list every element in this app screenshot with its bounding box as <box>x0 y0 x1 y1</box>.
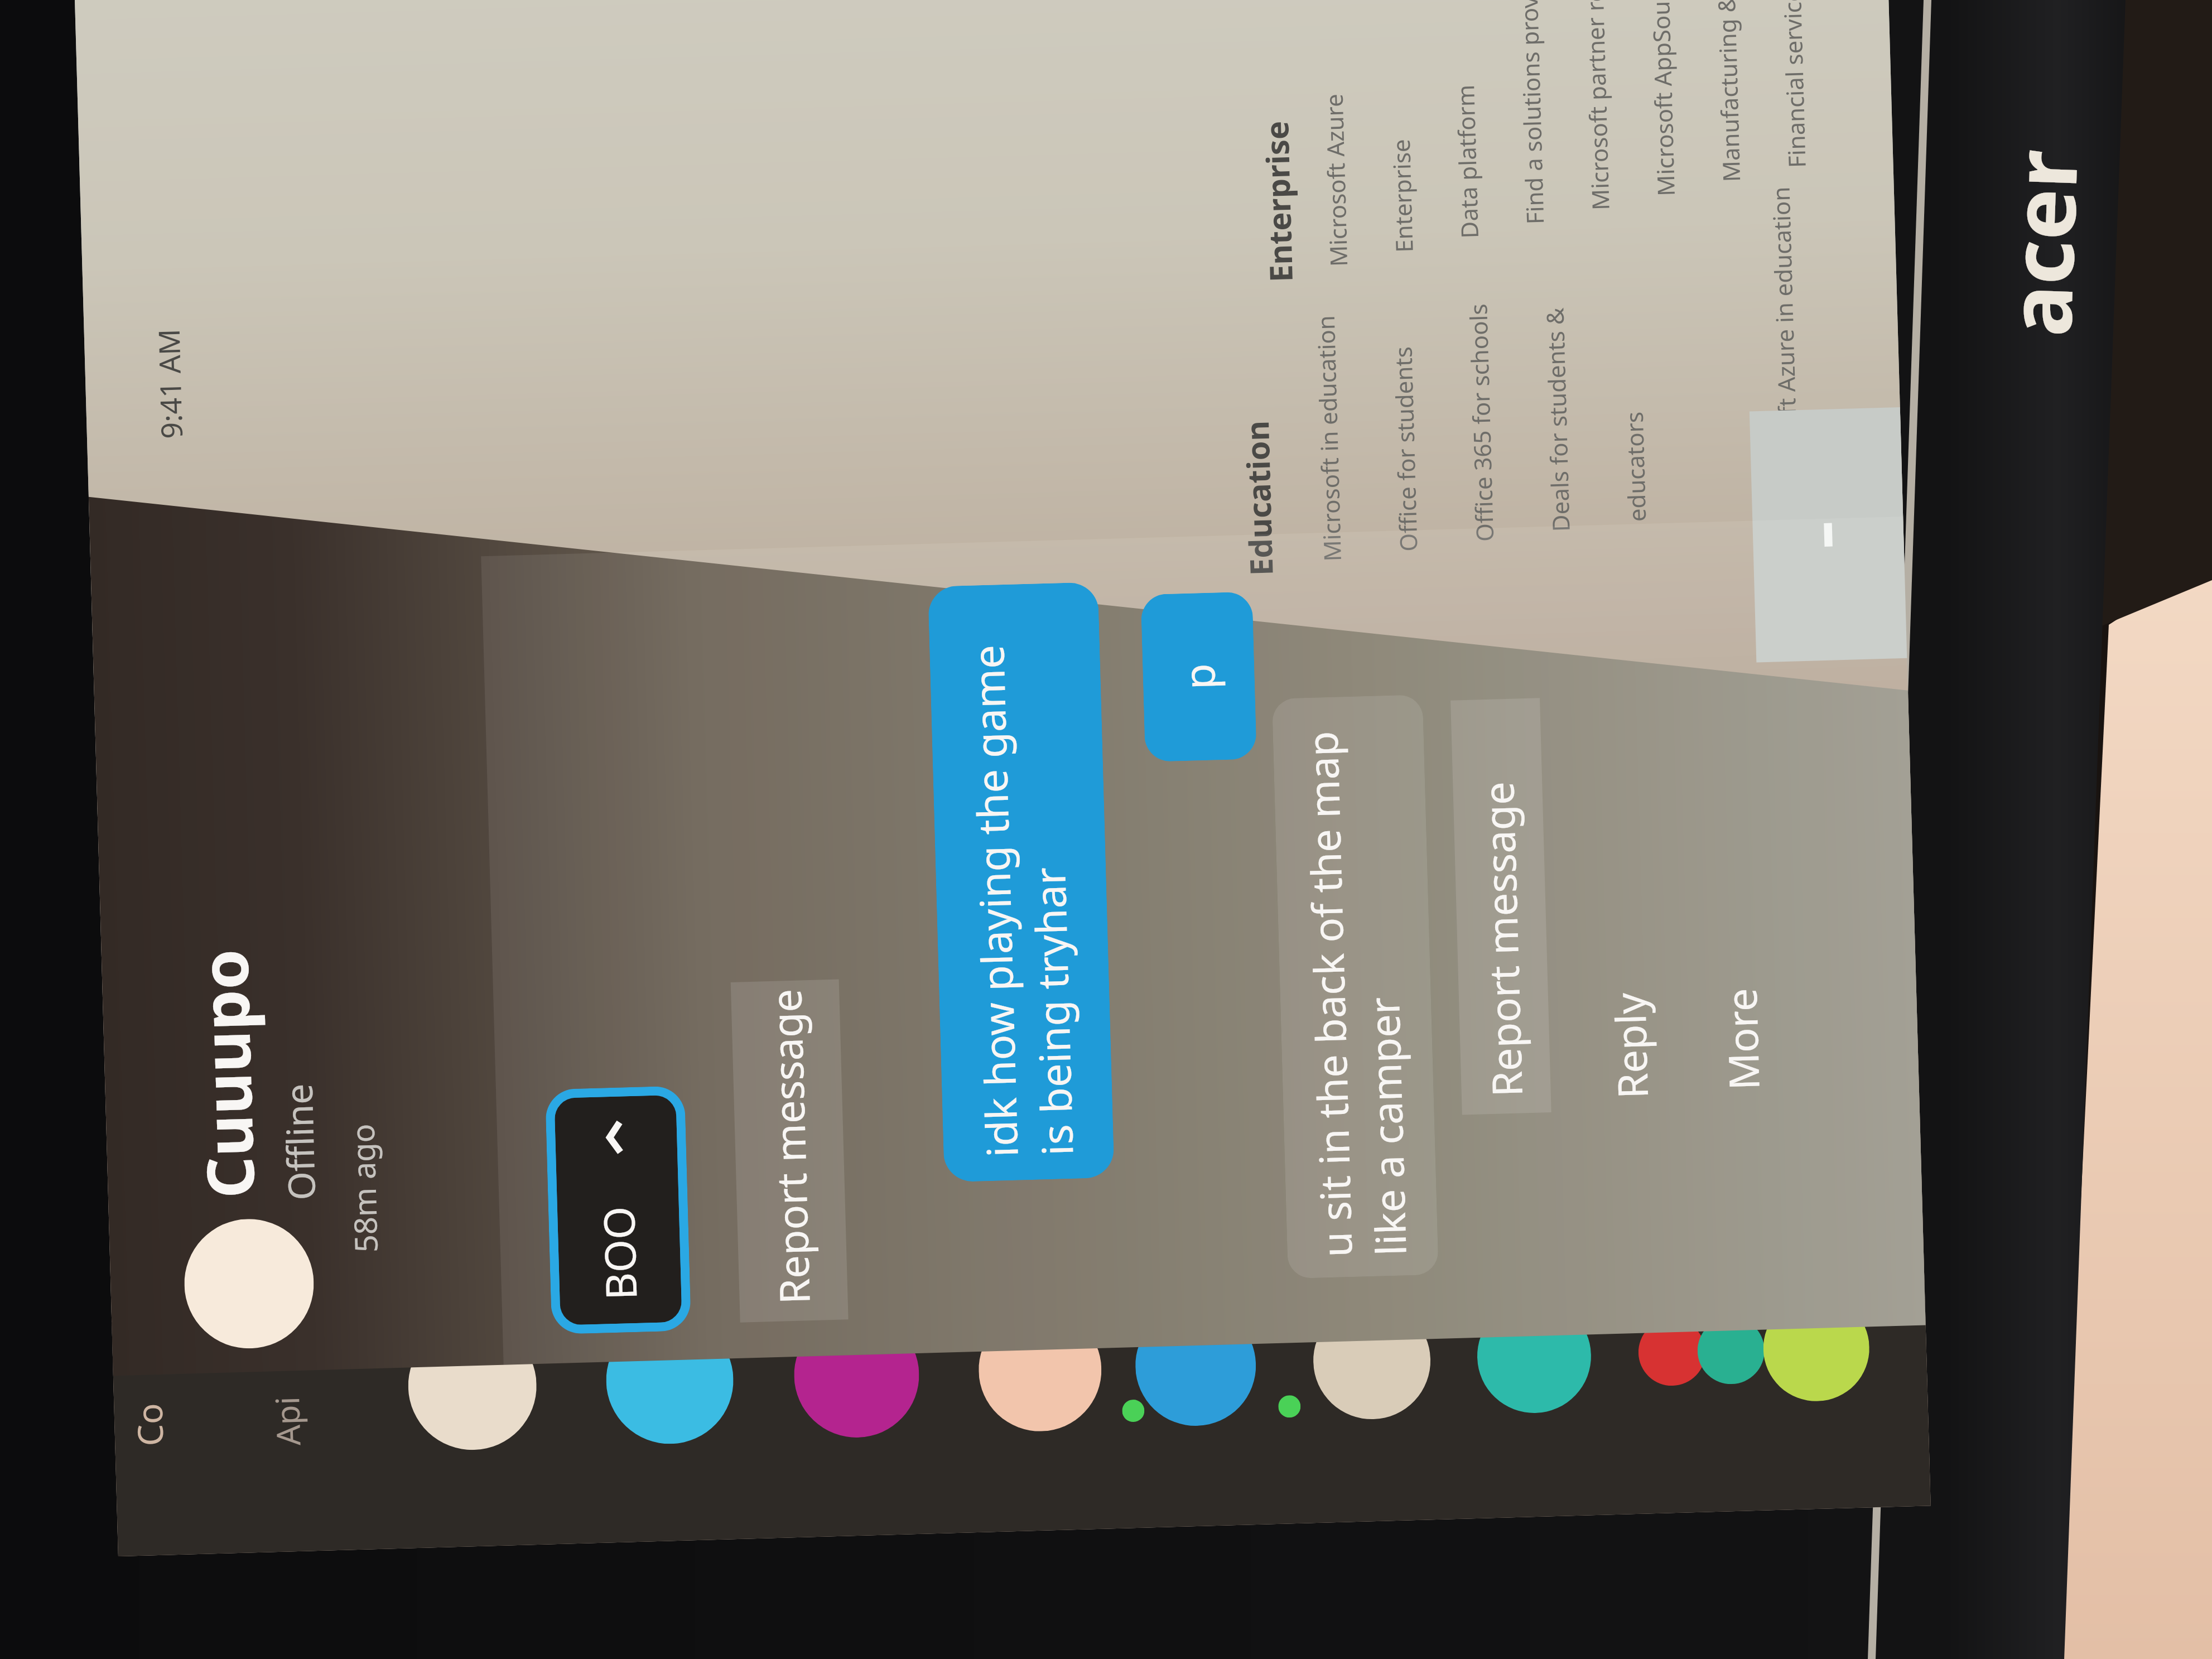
staticText: Microsoft AppSource <box>1643 0 1681 197</box>
staticText: Api <box>264 1396 310 1446</box>
staticText: More <box>1713 987 1772 1091</box>
button[interactable]: App icon <box>406 1320 538 1452</box>
staticText: Manufacturing & resources <box>1707 0 1747 182</box>
staticText: Microsoft Azure in education <box>1764 186 1805 502</box>
button[interactable]: App icon <box>604 1315 735 1446</box>
button[interactable]: Report message <box>731 979 848 1322</box>
button[interactable]: More <box>1695 849 1785 1091</box>
button[interactable]: App icon <box>1312 1300 1432 1421</box>
button[interactable]: App icon <box>1637 1318 1706 1387</box>
button[interactable]: App icon <box>1697 1316 1765 1385</box>
button[interactable]: App icon <box>792 1311 921 1439</box>
button[interactable]: Reply <box>1583 858 1674 1100</box>
staticText: Microsoft partner resources <box>1576 0 1616 211</box>
staticText: educators <box>1618 411 1653 522</box>
staticText: Report message <box>1470 780 1535 1098</box>
staticText: p <box>1169 663 1228 690</box>
button[interactable]: App icon <box>1476 1298 1593 1415</box>
button[interactable]: App icon <box>977 1307 1103 1433</box>
staticText: Enterprise <box>1385 138 1420 253</box>
button[interactable]: BOO <box>554 1095 682 1325</box>
staticText: 58m ago <box>341 1123 387 1253</box>
staticText: Education <box>1235 420 1282 576</box>
staticText: Find a solutions provider <box>1511 0 1551 225</box>
staticText: idk how playing the game is being tryhar <box>958 642 1085 1158</box>
staticText: u sit in the back of the map like a camp… <box>1293 729 1418 1258</box>
staticText: Microsoft in education <box>1309 315 1348 562</box>
staticText: Cuuupo <box>178 948 273 1200</box>
staticText: Financial services <box>1775 0 1812 168</box>
button[interactable]: App icon <box>1762 1294 1871 1403</box>
staticText: Co <box>125 1403 173 1447</box>
staticText: Reply <box>1601 992 1660 1100</box>
button[interactable]: Profile picture <box>183 1217 316 1350</box>
staticText: Office 365 for schools <box>1462 303 1500 542</box>
staticText: Report message <box>757 988 822 1305</box>
staticText: BOO <box>589 1205 650 1301</box>
staticText: Offline <box>273 1082 326 1201</box>
staticText: Office for students <box>1387 346 1424 552</box>
staticText: acer <box>1978 147 2103 338</box>
button[interactable]: Report message <box>1451 698 1551 1115</box>
staticText: Microsoft Azure <box>1318 93 1354 267</box>
button[interactable]: App icon <box>1134 1304 1258 1427</box>
staticText: Enterprise <box>1255 120 1302 283</box>
staticText: 9:41 AM <box>148 328 191 439</box>
staticText: Data platform <box>1449 84 1485 239</box>
staticText: Deals for students & <box>1538 307 1576 532</box>
